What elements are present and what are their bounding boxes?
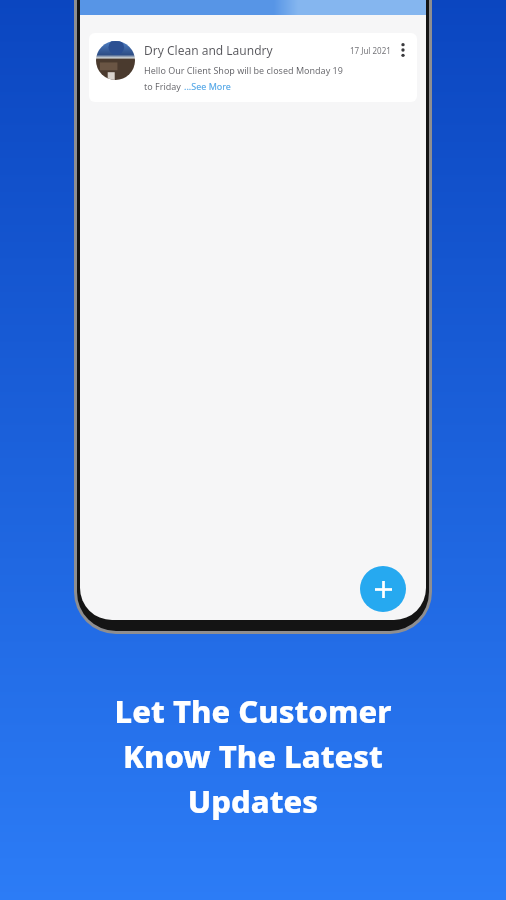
button[interactable]: Add notice — [360, 566, 406, 612]
staticText: ...See More — [184, 80, 231, 92]
staticText: Let The Customer Know The Latest Updates — [20, 690, 486, 822]
button[interactable]: More options — [397, 41, 409, 59]
staticText: Dry Clean and Laundry — [144, 42, 273, 58]
staticText: 17 Jul 2021 — [350, 45, 391, 56]
staticText: Hello Our Client Shop will be closed Mon… — [144, 64, 343, 76]
button[interactable]: Dry Clean and Laundry — [89, 33, 417, 102]
button[interactable]: ...See More — [184, 80, 231, 92]
staticText: to Friday — [144, 80, 184, 92]
